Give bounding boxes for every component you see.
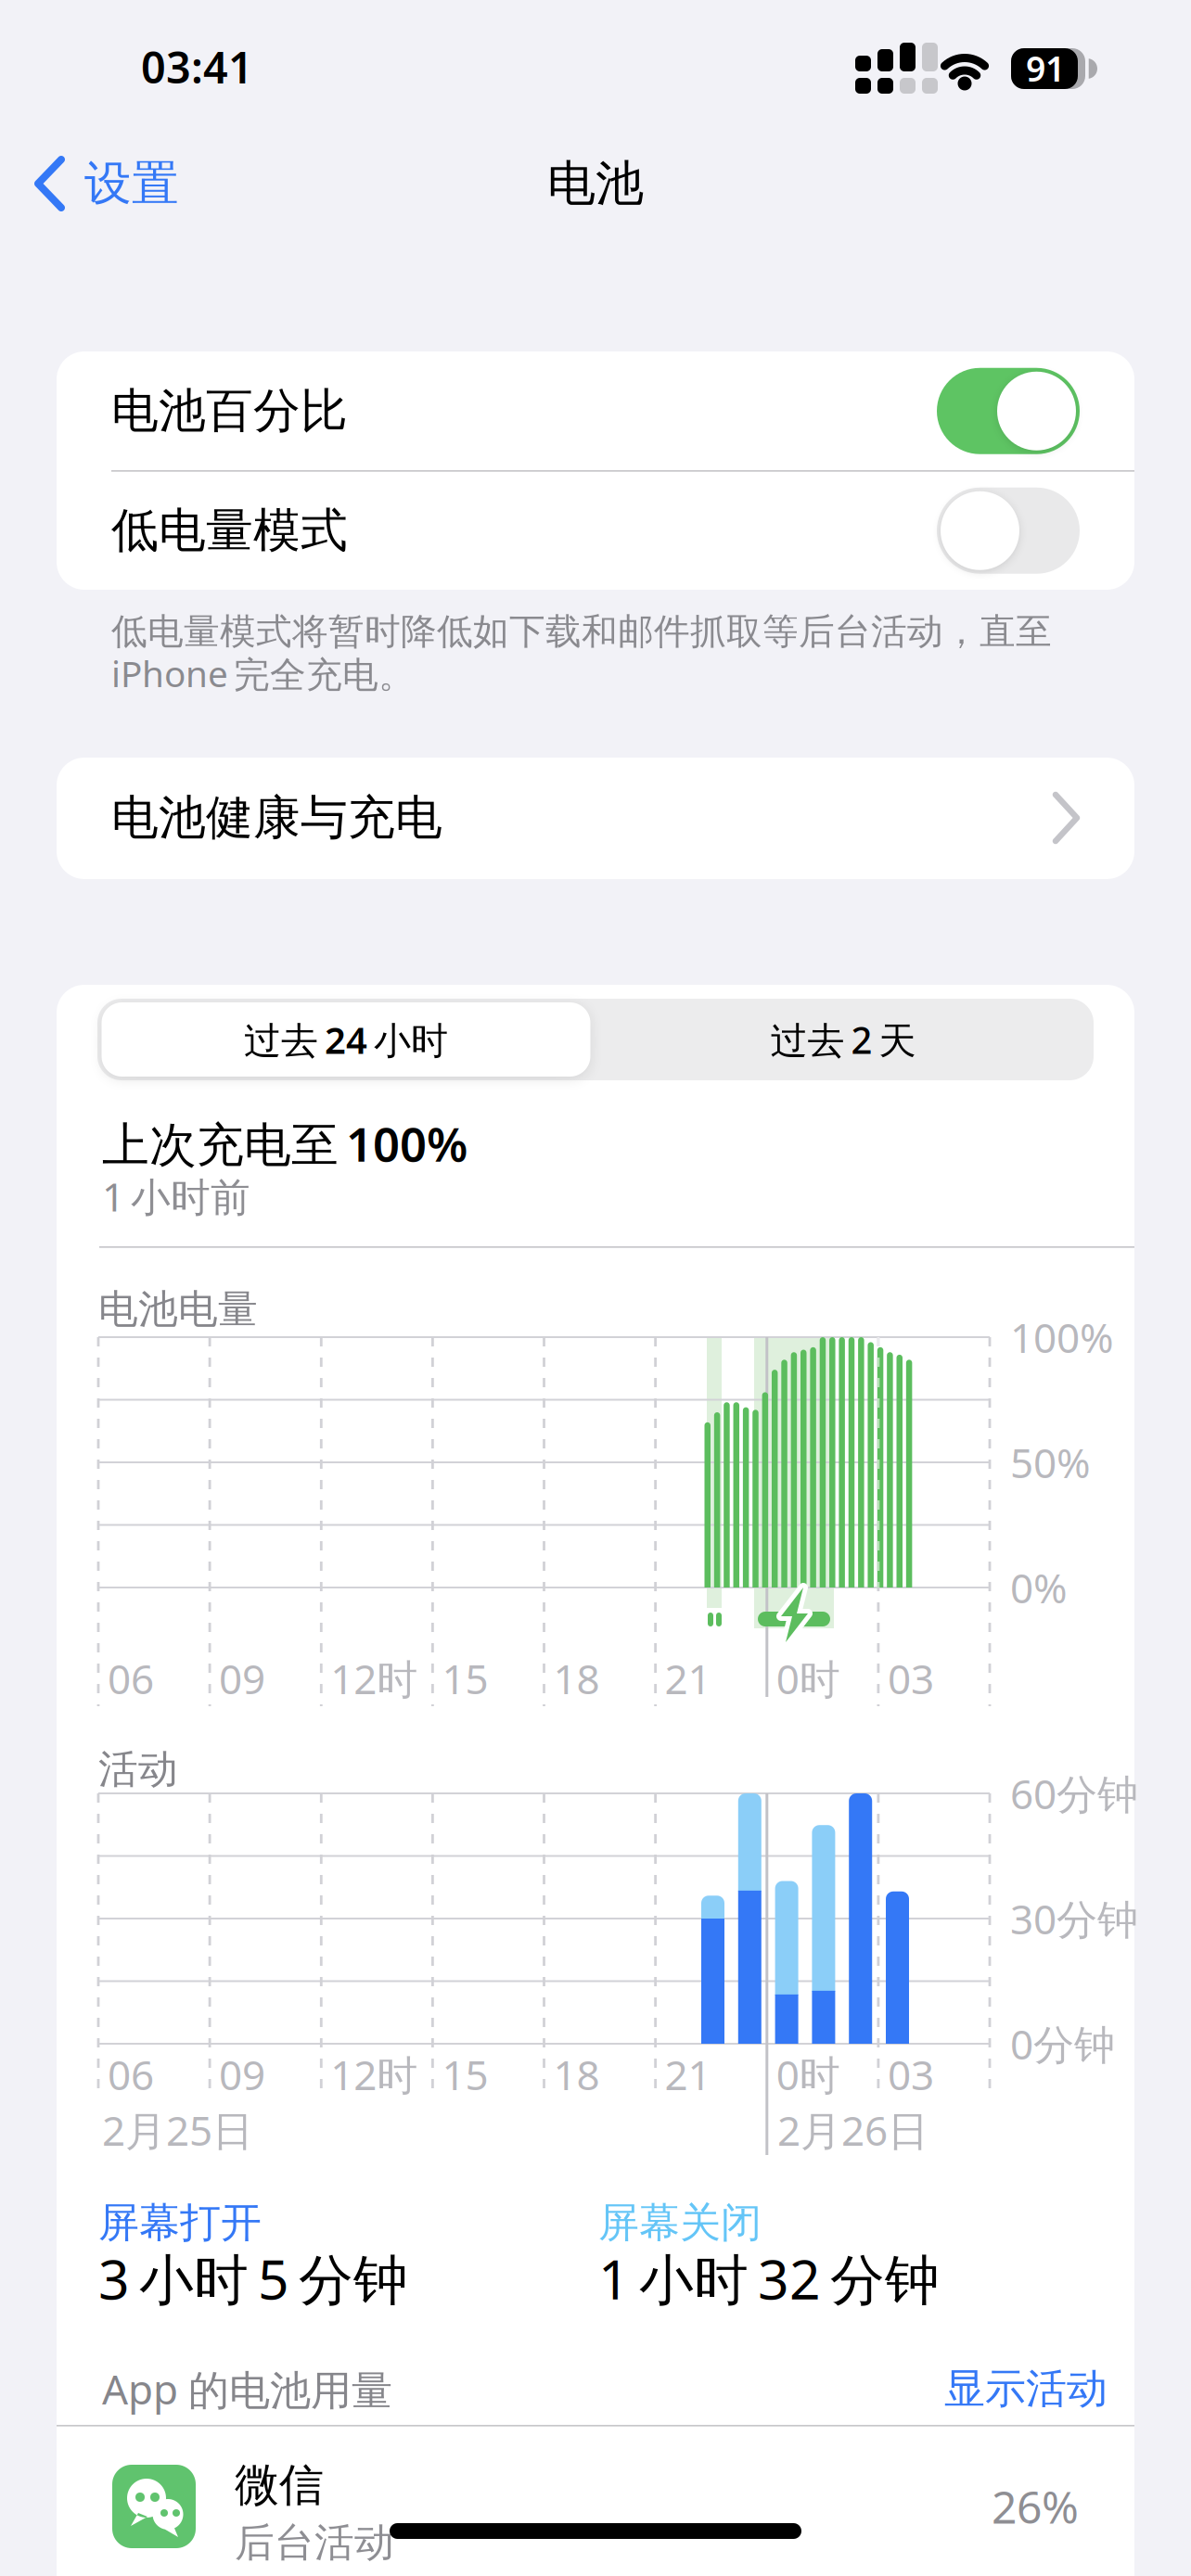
staticText: 电池电量 xyxy=(98,1285,258,1334)
staticText: 1 小时 32 分钟 xyxy=(598,2242,940,2314)
staticText: 0时 xyxy=(776,1651,840,1705)
staticText: 18 xyxy=(553,1651,600,1705)
staticText: 91 xyxy=(1026,45,1065,91)
staticText: 0% xyxy=(1010,1560,1068,1615)
button[interactable]: 显示活动 xyxy=(944,2364,1108,2414)
staticText: iPhone 完全充电。 xyxy=(111,649,415,697)
button[interactable]: 微信 xyxy=(57,2427,1134,2575)
staticText: 过去 24 小时 xyxy=(244,1015,448,1064)
staticText: 微信 xyxy=(235,2458,324,2512)
staticText: 30分钟 xyxy=(1010,1891,1138,1946)
button[interactable]: 过去 2 天 xyxy=(597,999,1089,1080)
staticText: 屏幕关闭 xyxy=(598,2198,762,2248)
button[interactable]: 过去 24 小时 xyxy=(100,999,592,1080)
staticText: 屏幕打开 xyxy=(98,2198,262,2248)
staticText: 15 xyxy=(442,1651,488,1705)
staticText: 26% xyxy=(992,2477,1079,2536)
staticText: 活动 xyxy=(98,1745,178,1794)
staticText: 上次充电至 100% xyxy=(102,1112,467,1175)
button[interactable]: 电池百分比 xyxy=(57,351,1134,471)
staticText: 12时 xyxy=(330,1651,418,1705)
staticText: 电池百分比 xyxy=(111,382,348,440)
staticText: 03:41 xyxy=(141,38,253,96)
staticText: 电池 xyxy=(547,154,644,213)
staticText: 显示活动 xyxy=(944,2364,1108,2414)
staticText: 设置 xyxy=(84,155,179,212)
staticText: 09 xyxy=(219,2047,265,2101)
staticText: 03 xyxy=(888,2047,934,2101)
button[interactable]: 电池健康与充电 xyxy=(57,758,1134,879)
staticText: 18 xyxy=(553,2047,600,2101)
staticText: 100% xyxy=(1010,1310,1114,1364)
staticText: 15 xyxy=(442,2047,488,2101)
button[interactable]: 设置 xyxy=(23,133,218,235)
staticText: 21 xyxy=(665,2047,711,2101)
staticText: 09 xyxy=(219,1651,265,1705)
staticText: 0分钟 xyxy=(1010,2017,1115,2071)
staticText: 0时 xyxy=(776,2047,840,2101)
staticText: 过去 2 天 xyxy=(770,1015,916,1064)
staticText: 50% xyxy=(1010,1435,1091,1489)
staticText: 06 xyxy=(108,2047,154,2101)
staticText: 21 xyxy=(665,1651,711,1705)
staticText: 03 xyxy=(888,1651,934,1705)
staticText: 电池健康与充电 xyxy=(111,789,442,847)
staticText: 后台活动 xyxy=(235,2518,394,2567)
staticText: App 的电池用量 xyxy=(102,2362,392,2416)
staticText: 2月26日 xyxy=(777,2103,928,2157)
staticText: 12时 xyxy=(330,2047,418,2101)
staticText: 06 xyxy=(108,1651,154,1705)
staticText: 低电量模式 xyxy=(111,502,348,559)
staticText: 60分钟 xyxy=(1010,1766,1138,1820)
button[interactable]: 低电量模式 xyxy=(57,471,1134,590)
staticText: 3 小时 5 分钟 xyxy=(98,2242,408,2314)
staticText: 2月25日 xyxy=(102,2103,253,2157)
staticText: 1 小时前 xyxy=(102,1170,250,1223)
staticText: 低电量模式将暂时降低如下载和邮件抓取等后台活动，直至 xyxy=(111,610,1052,654)
